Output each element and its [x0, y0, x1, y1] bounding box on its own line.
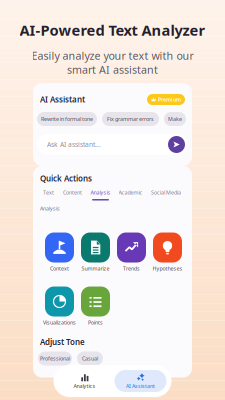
- staticText: Casual: [82, 355, 98, 362]
- staticText: Social Media: [151, 189, 181, 196]
- button[interactable]: Hypotheses: [153, 232, 182, 271]
- button[interactable]: Content: [58, 189, 86, 200]
- staticText: Text: [43, 189, 54, 196]
- staticText: Content: [63, 189, 82, 196]
- button[interactable]: Send: [168, 136, 185, 153]
- staticText: Points: [88, 319, 103, 326]
- staticText: Make: [168, 115, 182, 123]
- staticText: Academic: [118, 189, 142, 196]
- staticText: Fix grammar errors: [107, 115, 154, 123]
- button[interactable]: Summarize: [81, 232, 110, 271]
- button[interactable]: Context: [45, 232, 74, 271]
- button[interactable]: Fix grammar errors: [102, 112, 159, 126]
- staticText: Adjust Tone: [40, 337, 85, 347]
- button[interactable]: Professional: [38, 351, 72, 365]
- staticText: Easily analyze your text with our: [31, 48, 193, 63]
- staticText: AI Assistant: [40, 94, 85, 105]
- button[interactable]: Visualizations: [45, 286, 74, 325]
- button[interactable]: Points: [81, 286, 110, 325]
- button[interactable]: Trends: [117, 232, 146, 271]
- staticText: Visualizations: [43, 319, 76, 326]
- staticText: Ask AI assistant...: [47, 140, 101, 149]
- staticText: Summarize: [81, 265, 109, 272]
- button[interactable]: AI Assistant: [114, 370, 166, 392]
- staticText: Analysis: [40, 205, 60, 212]
- button[interactable]: Rewrite in formal tone: [37, 112, 97, 126]
- button[interactable]: Make: [164, 112, 186, 126]
- button[interactable]: Text: [38, 189, 58, 200]
- button[interactable]: Casual: [77, 351, 103, 365]
- staticText: Analysis: [90, 189, 110, 196]
- staticText: Quick Actions: [40, 173, 92, 184]
- button[interactable]: Academic: [114, 189, 146, 200]
- button[interactable]: Analysis: [86, 189, 114, 200]
- staticText: Professional: [40, 355, 70, 362]
- staticText: Rewrite in formal tone: [41, 115, 93, 123]
- staticText: smart AI assistant: [67, 62, 158, 77]
- staticText: Premium: [158, 96, 181, 103]
- staticText: AI-Powered Text Analyzer: [19, 20, 205, 40]
- button[interactable]: Social Media: [146, 189, 185, 200]
- button[interactable]: Analytics: [58, 370, 110, 392]
- staticText: Analytics: [73, 382, 95, 390]
- staticText: AI Assistant: [126, 382, 155, 390]
- staticText: Hypotheses: [152, 265, 182, 272]
- button[interactable]: Premium: [147, 94, 192, 105]
- staticText: Trends: [123, 265, 140, 272]
- staticText: Context: [50, 265, 69, 272]
